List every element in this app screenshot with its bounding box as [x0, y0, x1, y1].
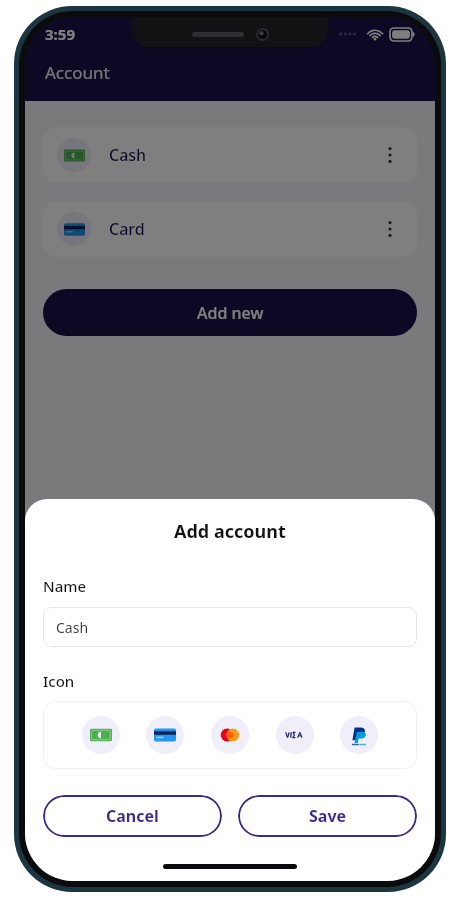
button[interactable]: Cancel — [43, 795, 222, 837]
staticText: Save — [309, 805, 347, 827]
button[interactable]: Cash — [43, 607, 417, 647]
button[interactable]: Visa icon — [276, 716, 314, 754]
button[interactable]: Mastercard icon — [211, 716, 249, 754]
staticText: Icon — [43, 671, 75, 691]
button[interactable]: More options — [377, 216, 403, 242]
button[interactable]: Save — [238, 795, 417, 837]
staticText: Account — [45, 61, 110, 84]
staticText: Cash — [56, 618, 89, 637]
button[interactable]: More options — [377, 142, 403, 168]
button[interactable]: Card — [43, 201, 417, 257]
staticText: Name — [43, 576, 87, 596]
staticText: Card — [109, 218, 145, 240]
staticText: Add account — [174, 519, 286, 544]
button[interactable]: Cash — [43, 127, 417, 183]
button[interactable] — [25, 17, 435, 881]
staticText: 3:59 — [45, 24, 75, 44]
button[interactable]: PayPal icon — [340, 716, 378, 754]
staticText: Cancel — [106, 805, 159, 827]
button[interactable]: Card icon — [146, 716, 184, 754]
button[interactable]: Cash icon — [82, 716, 120, 754]
staticText: Add new — [197, 302, 264, 324]
staticText: Cash — [109, 144, 147, 166]
button[interactable]: Add new — [43, 289, 417, 336]
